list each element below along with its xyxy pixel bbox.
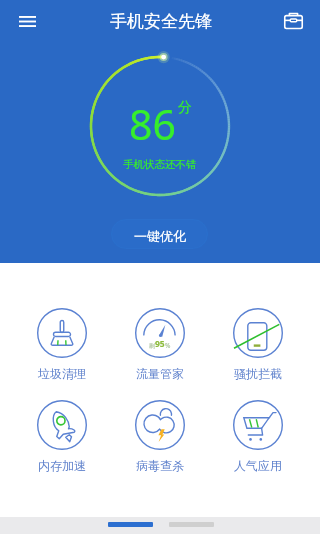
staticText: % [165, 341, 171, 350]
staticText: 95 [155, 338, 165, 350]
button[interactable]: Menu [3, 0, 51, 42]
button[interactable]: 剩 [111, 308, 209, 381]
button[interactable]: Toolbox [271, 0, 315, 42]
staticText: 分 [178, 99, 192, 117]
staticText: 手机状态还不错 [123, 158, 197, 171]
staticText: 病毒查杀 [136, 458, 184, 473]
staticText: 流量管家 [136, 366, 184, 381]
button[interactable]: 骚扰拦截 [209, 308, 307, 381]
staticText: 人气应用 [234, 458, 282, 473]
staticText: 86 [129, 96, 176, 152]
staticText: 骚扰拦截 [234, 366, 282, 381]
staticText: 垃圾清理 [38, 366, 86, 381]
staticText: 一键优化 [134, 228, 186, 244]
staticText: 手机安全先锋 [110, 11, 212, 32]
button[interactable]: 一键优化 [111, 219, 208, 249]
staticText: 剩 [149, 342, 155, 350]
button[interactable]: 垃圾清理 [13, 308, 111, 381]
button[interactable]: 内存加速 [13, 400, 111, 473]
button[interactable]: 病毒查杀 [111, 400, 209, 473]
staticText: 内存加速 [38, 458, 86, 473]
button[interactable]: 人气应用 [209, 400, 307, 473]
